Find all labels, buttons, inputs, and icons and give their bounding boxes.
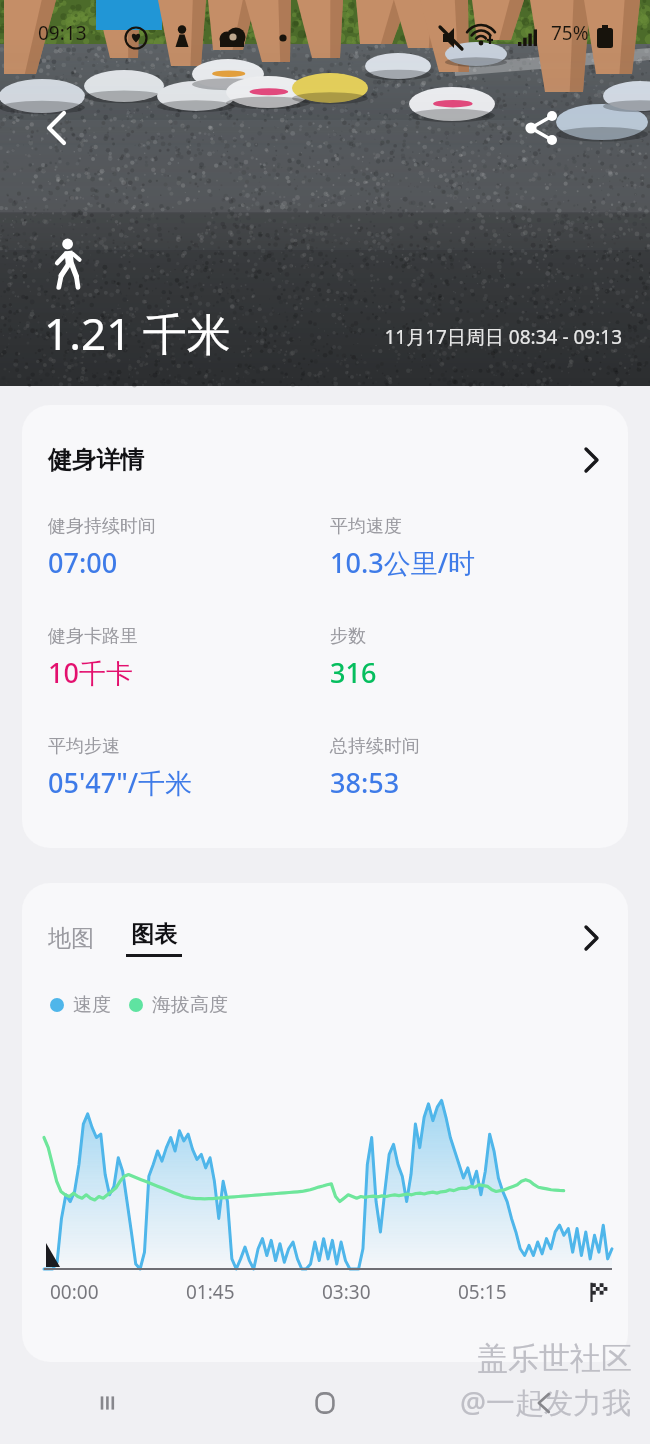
staticText: 09:13 bbox=[38, 20, 87, 46]
staticText: 盖乐世社区 bbox=[477, 1339, 632, 1378]
staticText: 图表 bbox=[131, 920, 177, 949]
button[interactable]: Open chart details bbox=[578, 925, 604, 951]
staticText: 地图 bbox=[48, 924, 94, 953]
staticText: 05:15 bbox=[458, 1279, 507, 1305]
button[interactable]: Back bbox=[433, 1362, 650, 1444]
staticText: 00:00 bbox=[50, 1279, 99, 1305]
staticText: 03:30 bbox=[322, 1279, 371, 1305]
button[interactable]: Home bbox=[216, 1362, 433, 1444]
button[interactable]: 图表 bbox=[126, 920, 182, 957]
staticText: 步数 bbox=[330, 625, 366, 648]
staticText: 平均步速 bbox=[48, 735, 120, 758]
staticText: 10千卡 bbox=[48, 654, 133, 691]
staticText: @一起发力我 bbox=[460, 1382, 632, 1422]
staticText: 平均速度 bbox=[330, 515, 402, 538]
staticText: 316 bbox=[330, 654, 377, 691]
staticText: 速度 bbox=[73, 993, 111, 1017]
staticText: 1.21 千米 bbox=[44, 303, 231, 363]
button[interactable]: Share bbox=[513, 99, 571, 157]
staticText: 10.3公里/时 bbox=[330, 544, 476, 581]
staticText: 健身卡路里 bbox=[48, 625, 138, 648]
staticText: 01:45 bbox=[186, 1279, 235, 1305]
staticText: 健身详情 bbox=[48, 445, 144, 475]
staticText: 05'47"/千米 bbox=[48, 764, 193, 801]
button[interactable]: 健身详情 bbox=[22, 405, 628, 515]
staticText: 健身持续时间 bbox=[48, 515, 156, 538]
button[interactable]: Back bbox=[27, 99, 85, 157]
staticText: 75% bbox=[551, 20, 589, 46]
staticText: 海拔高度 bbox=[152, 993, 228, 1017]
staticText: 07:00 bbox=[48, 544, 118, 581]
staticText: 11月17日周日 08:34 - 09:13 bbox=[250, 324, 622, 350]
button[interactable]: Recent apps bbox=[0, 1362, 216, 1444]
button[interactable]: 地图 bbox=[48, 924, 94, 953]
staticText: 38:53 bbox=[330, 764, 400, 801]
staticText: 总持续时间 bbox=[330, 735, 420, 758]
